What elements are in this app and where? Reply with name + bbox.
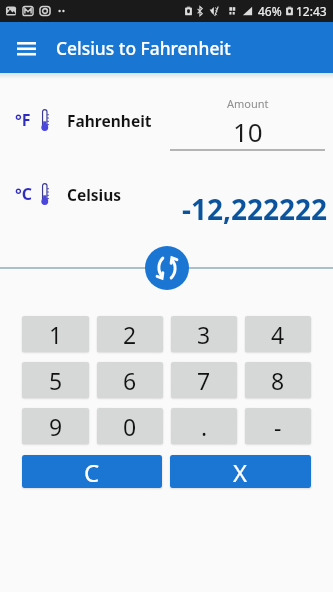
button[interactable]: Open navigation menu [10,32,42,64]
staticText: 6 [123,365,137,396]
button[interactable]: 0 [97,408,163,444]
button[interactable]: X [170,455,311,488]
button[interactable]: Amount [170,96,325,151]
button[interactable]: 6 [97,362,163,398]
button[interactable]: 3 [171,316,237,352]
staticText: 2 [123,319,137,350]
button[interactable]: - [245,408,311,444]
button[interactable]: 7 [171,362,237,398]
staticText: 4 [271,319,285,350]
button[interactable]: °C [15,181,70,207]
button[interactable]: 2 [97,316,163,352]
staticText: - [274,411,282,442]
staticText: Fahrenheit [67,110,152,131]
button[interactable]: . [171,408,237,444]
staticText: 1 [49,319,63,350]
staticText: Amount [227,96,269,111]
staticText: 7 [197,365,211,396]
staticText: °C [15,183,33,205]
button[interactable]: 9 [22,408,89,444]
staticText: °F [15,109,31,131]
button[interactable]: Swap units [145,246,189,290]
staticText: 46% [258,3,282,19]
staticText: . [201,411,208,442]
staticText: 9 [49,411,63,442]
button[interactable]: 5 [22,362,89,398]
staticText: -12,222222 [182,190,328,228]
staticText: 5 [49,365,63,396]
staticText: 8 [271,365,285,396]
button[interactable]: 8 [245,362,311,398]
staticText: X [233,456,248,488]
button[interactable]: C [22,455,162,488]
staticText: Celsius to Fahrenheit [56,36,231,60]
button[interactable]: 1 [22,316,89,352]
staticText: 12:43 [296,3,327,19]
staticText: 0 [123,411,137,442]
staticText: 10 [233,114,263,149]
staticText: 3 [197,319,211,350]
staticText: Celsius [67,184,122,205]
button[interactable]: °F [15,107,100,133]
staticText: C [84,456,100,488]
button[interactable]: 4 [245,316,311,352]
